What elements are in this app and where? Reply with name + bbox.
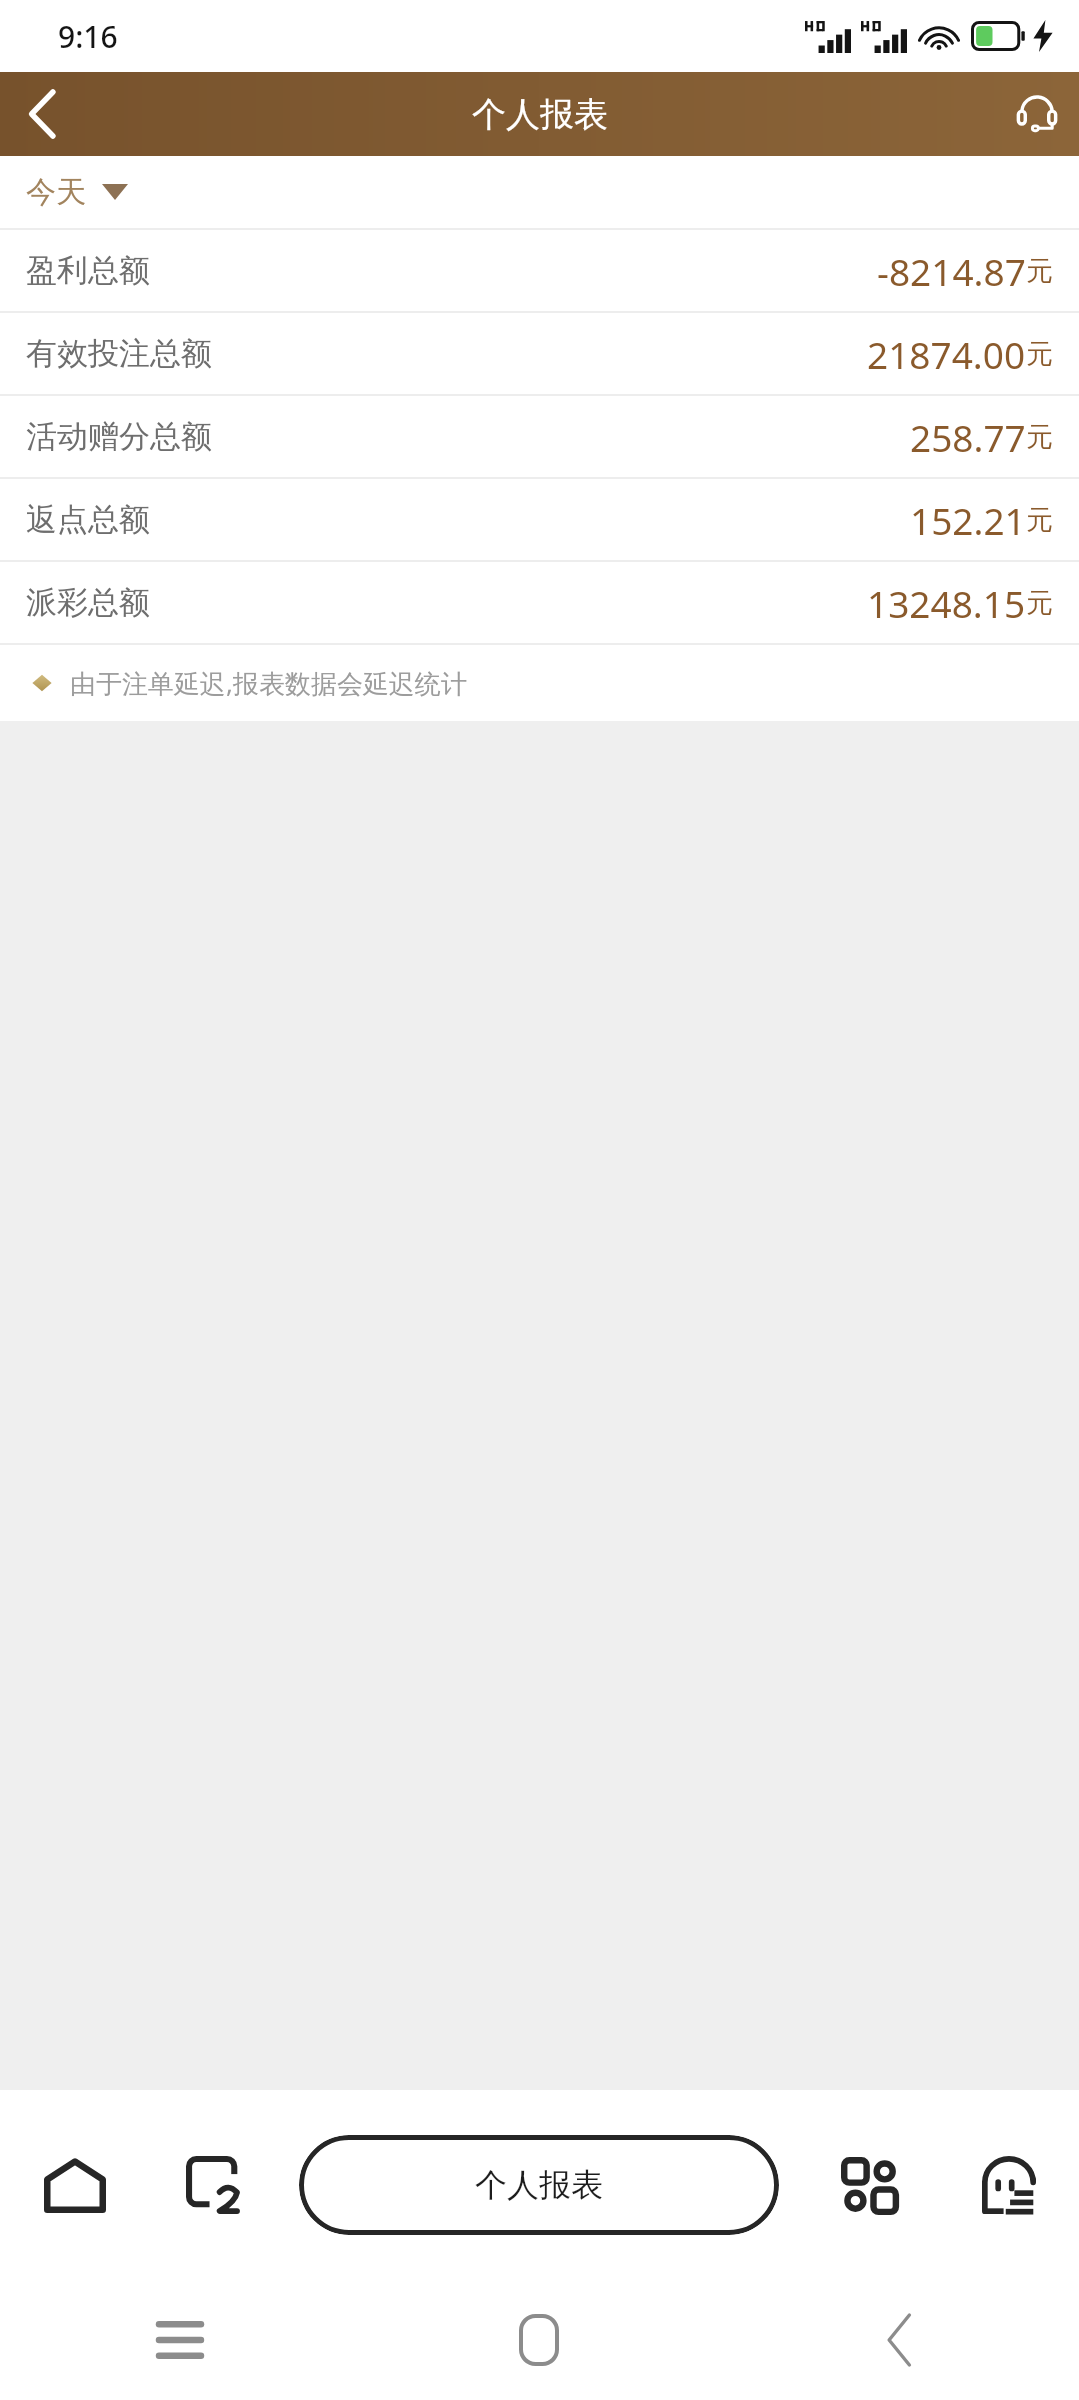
staticText: 今天 xyxy=(26,173,86,211)
staticText: 21874.00 xyxy=(867,329,1026,379)
button[interactable]: Home xyxy=(0,2110,150,2260)
staticText: 返点总额 xyxy=(26,500,150,539)
button[interactable]: Apps xyxy=(799,2110,939,2260)
staticText: 派彩总额 xyxy=(26,583,150,622)
staticText: 元 xyxy=(1026,503,1053,537)
button[interactable]: Recents xyxy=(0,2280,359,2400)
button[interactable]: Tabs, 2 open xyxy=(150,2110,280,2260)
staticText: 258.77 xyxy=(910,412,1026,462)
staticText: 个人报表 xyxy=(475,2165,603,2205)
staticText: 元 xyxy=(1026,586,1053,620)
staticText: 盈利总额 xyxy=(26,251,150,290)
button[interactable]: 盈利总额 xyxy=(0,230,1079,311)
staticText: 152.21 xyxy=(910,495,1026,545)
staticText: 9:16 xyxy=(58,16,118,57)
staticText: 个人报表 xyxy=(472,93,608,136)
button[interactable]: 个人报表 xyxy=(299,2135,779,2235)
button[interactable]: 活动赠分总额 xyxy=(0,396,1079,477)
staticText: 活动赠分总额 xyxy=(26,417,212,456)
staticText: -8214.87 xyxy=(877,246,1026,296)
staticText: 由于注单延迟,报表数据会延迟统计 xyxy=(70,665,467,701)
button[interactable]: Back xyxy=(0,72,84,156)
button[interactable]: 今天 xyxy=(0,156,1079,228)
button[interactable]: Profile xyxy=(939,2110,1079,2260)
button[interactable]: Back xyxy=(719,2280,1079,2400)
button[interactable]: 有效投注总额 xyxy=(0,313,1079,394)
button[interactable]: Customer service xyxy=(995,72,1079,156)
button[interactable]: Home xyxy=(359,2280,719,2400)
staticText: 元 xyxy=(1026,420,1053,454)
button[interactable]: 派彩总额 xyxy=(0,562,1079,643)
button[interactable]: 返点总额 xyxy=(0,479,1079,560)
staticText: 13248.15 xyxy=(867,578,1026,628)
staticText: 元 xyxy=(1026,337,1053,371)
staticText: 元 xyxy=(1026,254,1053,288)
staticText: 有效投注总额 xyxy=(26,334,212,373)
